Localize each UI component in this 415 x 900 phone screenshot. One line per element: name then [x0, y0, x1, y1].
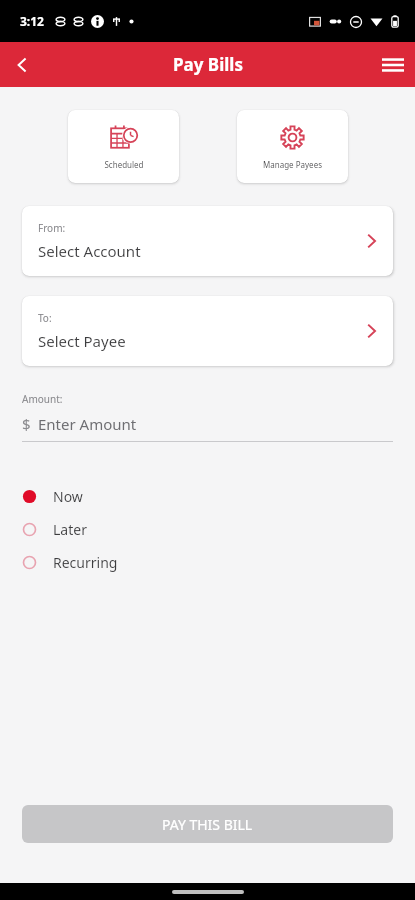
button[interactable]: Back: [0, 43, 44, 87]
button[interactable]: Manage Payees: [237, 110, 348, 183]
staticText: Enter Amount: [38, 414, 137, 434]
button[interactable]: Recurring: [0, 546, 415, 579]
button[interactable]: Scheduled: [68, 110, 179, 183]
staticText: Select Account: [38, 241, 141, 261]
staticText: PAY THIS BILL: [162, 815, 253, 834]
staticText: Now: [53, 487, 83, 506]
button[interactable]: From:: [22, 206, 393, 276]
staticText: To:: [38, 311, 52, 325]
staticText: Select Payee: [38, 331, 126, 351]
staticText: Scheduled: [104, 159, 144, 170]
button[interactable]: Menu: [371, 43, 415, 87]
staticText: Manage Payees: [263, 159, 322, 170]
staticText: Recurring: [53, 553, 118, 572]
staticText: Pay Bills: [173, 53, 243, 76]
button[interactable]: PAY THIS BILL: [22, 805, 393, 843]
button[interactable]: To:: [22, 296, 393, 366]
staticText: 3:12: [20, 13, 44, 29]
button[interactable]: Later: [0, 513, 415, 546]
staticText: Later: [53, 520, 87, 539]
button[interactable]: Now: [0, 480, 415, 513]
staticText: $: [22, 414, 31, 434]
staticText: Amount:: [22, 392, 63, 406]
staticText: From:: [38, 221, 66, 235]
